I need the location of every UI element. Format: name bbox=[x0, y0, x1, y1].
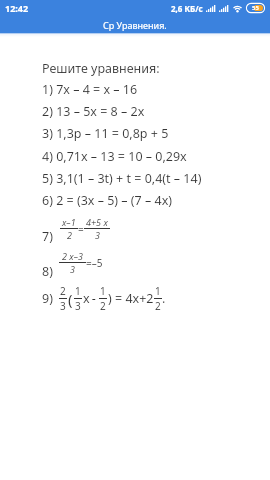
staticText: Ср Уравнения. bbox=[103, 19, 167, 31]
staticText: 1 bbox=[100, 284, 106, 298]
staticText: 1 bbox=[75, 284, 81, 298]
staticText: 4) 0,71x – 13 = 10 – 0,29x bbox=[42, 148, 187, 165]
staticText: 3 bbox=[95, 229, 100, 241]
staticText: 2 bbox=[67, 229, 72, 241]
staticText: 3 bbox=[60, 299, 66, 313]
staticText: 2,6 КБ/c bbox=[171, 3, 203, 14]
staticText: 1 bbox=[155, 284, 161, 298]
staticText: 2 bbox=[60, 284, 66, 298]
staticText: 2 bbox=[155, 299, 161, 313]
staticText: = bbox=[78, 222, 84, 236]
other: Battery 55 percent bbox=[246, 3, 265, 13]
staticText: x - bbox=[83, 290, 98, 307]
staticText: =–5 bbox=[86, 256, 103, 270]
staticText: 8) bbox=[42, 263, 53, 280]
staticText: 5) 3,1(1 – 3t) + t = 0,4(t – 14) bbox=[42, 170, 202, 187]
staticText: 12:42 bbox=[5, 2, 29, 14]
staticText: 9) bbox=[42, 290, 53, 307]
staticText: 7) bbox=[42, 228, 53, 245]
staticText: ) = 4x+2 bbox=[108, 290, 154, 307]
staticText: 2 bbox=[100, 299, 106, 313]
staticText: 3 bbox=[75, 299, 81, 313]
staticText: 6) 2 = (3x – 5) – (7 – 4x) bbox=[42, 192, 173, 209]
staticText: 2) 13 – 5x = 8 – 2x bbox=[42, 103, 145, 120]
staticText: x–1 bbox=[62, 216, 76, 228]
staticText: 2 x–3 bbox=[62, 250, 83, 262]
staticText: . bbox=[162, 290, 166, 307]
staticText: 3 bbox=[70, 263, 75, 275]
staticText: ( bbox=[68, 289, 73, 309]
button[interactable]: Ср Уравнения. bbox=[0, 16, 270, 33]
staticText: 3) 1,3p – 11 = 0,8p + 5 bbox=[42, 125, 169, 142]
staticText: Решите уравнения: bbox=[42, 60, 160, 77]
staticText: 4+5 x bbox=[86, 216, 108, 228]
staticText: 1) 7x – 4 = x – 16 bbox=[42, 81, 138, 98]
staticText: 55 bbox=[252, 4, 259, 12]
